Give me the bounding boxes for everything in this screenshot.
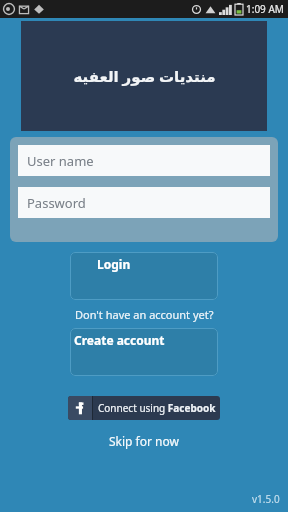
staticText: Don't have an account yet? [75, 307, 214, 322]
staticText: Login [97, 256, 131, 272]
staticText: منتديات صور العفيه [73, 66, 216, 86]
staticText: v1.5.0 [252, 492, 280, 506]
button[interactable]: Create account [70, 328, 218, 376]
button[interactable]: Password [18, 187, 270, 218]
staticText: Create account [74, 332, 165, 348]
staticText: Connect using Facebook [98, 401, 216, 415]
button[interactable]: Skip for now [99, 430, 189, 452]
button[interactable]: Connect using Facebook [68, 396, 220, 420]
staticText: Password [27, 194, 86, 212]
staticText: 1:09 AM [246, 2, 284, 16]
staticText: Skip for now [109, 433, 179, 449]
button[interactable]: Login [70, 252, 218, 300]
button[interactable]: User name [18, 145, 270, 176]
staticText: User name [27, 152, 94, 170]
